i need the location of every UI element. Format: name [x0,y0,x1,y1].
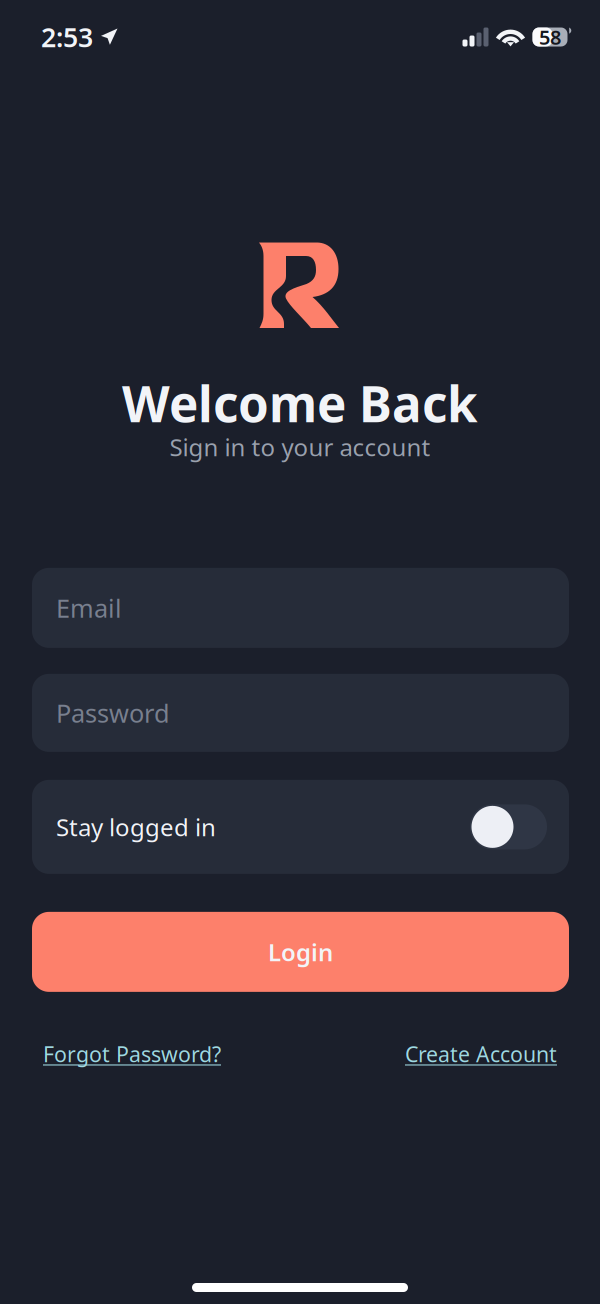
staticText: Welcome Back [122,370,478,436]
staticText: Sign in to your account [169,431,430,463]
staticText: Forgot Password? [43,1040,221,1068]
button[interactable]: Create Account [405,1040,557,1068]
button[interactable]: Stay logged in [0,780,600,874]
button[interactable]: Forgot Password? [43,1040,221,1068]
staticText: 58 [539,24,561,50]
staticText: Create Account [405,1040,557,1068]
staticText: Login [268,936,333,968]
staticText: 2:53 [41,19,93,55]
staticText: Password [56,696,170,730]
button[interactable]: Login [0,912,600,992]
staticText: Email [56,591,122,625]
staticText: Stay logged in [56,811,216,843]
